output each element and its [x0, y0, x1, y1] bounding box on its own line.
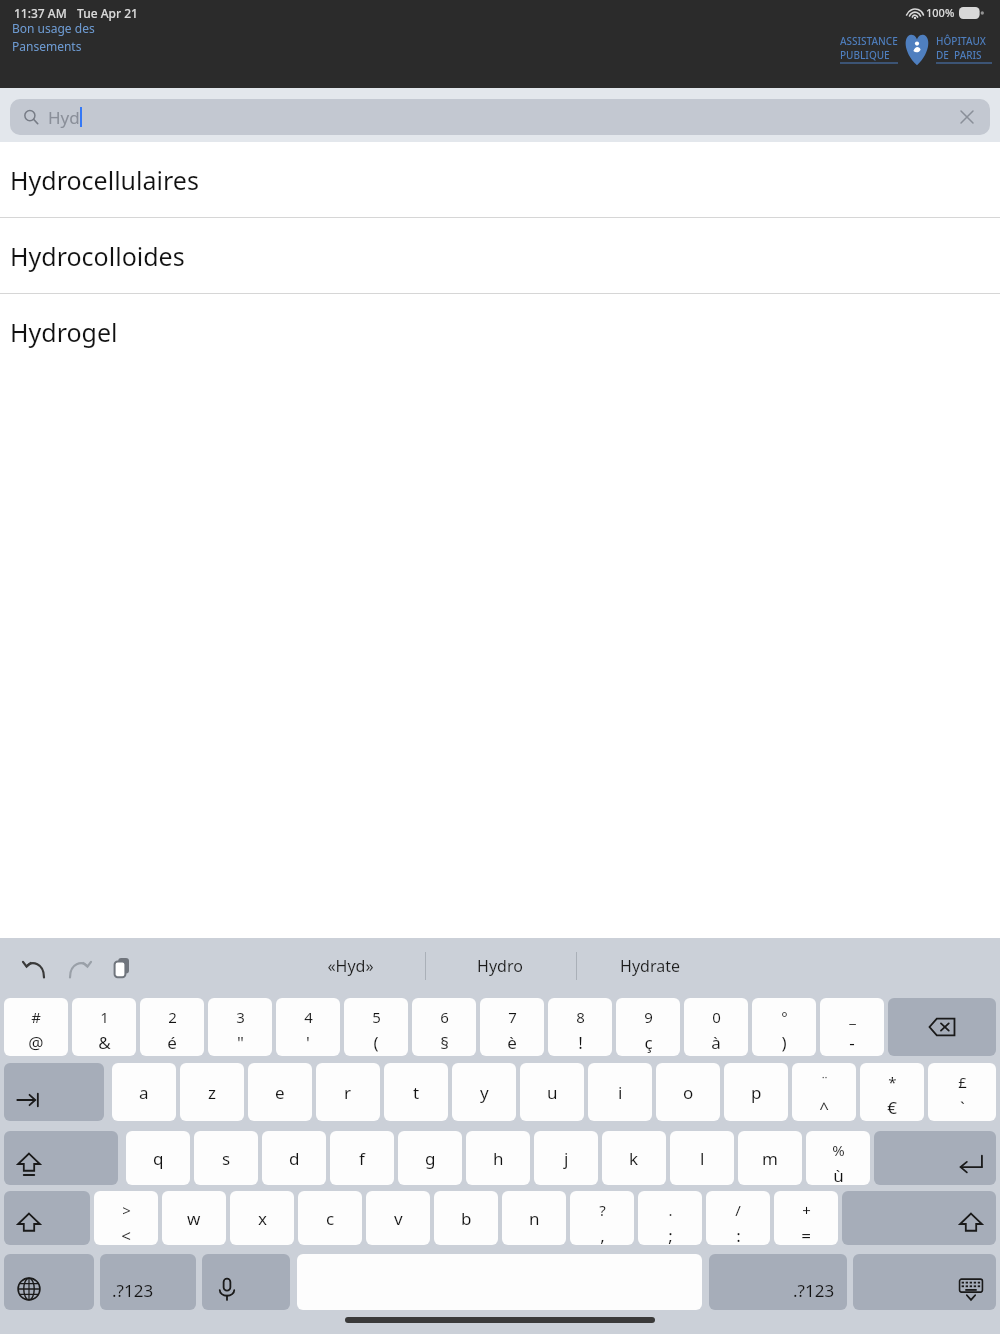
- button[interactable]: Clear search: [952, 102, 982, 132]
- staticText: g: [425, 1147, 436, 1170]
- staticText: Hydrocellulaires: [10, 163, 199, 197]
- staticText: PUBLIQUE: [840, 48, 890, 62]
- button[interactable]: 0: [684, 998, 748, 1056]
- button[interactable]: g: [398, 1131, 462, 1185]
- button[interactable]: f: [330, 1131, 394, 1185]
- staticText: *: [888, 1072, 897, 1092]
- staticText: v: [394, 1207, 403, 1230]
- button[interactable]: n: [502, 1191, 566, 1245]
- button[interactable]: Hydrocolloides: [0, 218, 1000, 293]
- button[interactable]: e: [248, 1063, 312, 1121]
- button[interactable]: y: [452, 1063, 516, 1121]
- button[interactable]: %: [806, 1131, 870, 1185]
- staticText: :: [736, 1224, 741, 1245]
- button[interactable]: *: [860, 1063, 924, 1121]
- button[interactable]: Hyd: [10, 99, 990, 135]
- button[interactable]: t: [384, 1063, 448, 1121]
- staticText: ASSISTANCE: [840, 34, 898, 48]
- staticText: <: [121, 1224, 131, 1245]
- button[interactable]: >: [94, 1191, 158, 1245]
- staticText: ): [781, 1031, 787, 1054]
- button[interactable]: /: [706, 1191, 770, 1245]
- staticText: .: [668, 1200, 673, 1220]
- button[interactable]: Redo: [64, 954, 94, 984]
- button[interactable]: Change keyboard: [4, 1254, 94, 1310]
- staticText: Pansements: [12, 38, 82, 54]
- button[interactable]: °: [752, 998, 816, 1056]
- button[interactable]: ?: [570, 1191, 634, 1245]
- button[interactable]: 1: [72, 998, 136, 1056]
- button[interactable]: £: [928, 1063, 996, 1121]
- button[interactable]: Caps lock: [4, 1131, 118, 1185]
- button[interactable]: o: [656, 1063, 720, 1121]
- button[interactable]: q: [126, 1131, 190, 1185]
- button[interactable]: w: [162, 1191, 226, 1245]
- button[interactable]: c: [298, 1191, 362, 1245]
- button[interactable]: 7: [480, 998, 544, 1056]
- button[interactable]: Tab: [4, 1063, 104, 1121]
- staticText: w: [187, 1207, 201, 1230]
- staticText: r: [344, 1081, 352, 1104]
- button[interactable]: Backspace: [888, 998, 996, 1056]
- button[interactable]: 6: [412, 998, 476, 1056]
- button[interactable]: Shift: [4, 1191, 90, 1245]
- button[interactable]: a: [112, 1063, 176, 1121]
- button[interactable]: Assistance Publique Hopitaux de Paris: [840, 32, 992, 66]
- button[interactable]: k: [602, 1131, 666, 1185]
- button[interactable]: ¨: [792, 1063, 856, 1121]
- button[interactable]: #: [4, 998, 68, 1056]
- button[interactable]: Hide keyboard: [853, 1254, 996, 1310]
- button[interactable]: h: [466, 1131, 530, 1185]
- button[interactable]: u: [520, 1063, 584, 1121]
- staticText: °: [781, 1007, 788, 1027]
- staticText: §: [440, 1031, 449, 1054]
- button[interactable]: «Hyd»: [280, 944, 420, 988]
- button[interactable]: l: [670, 1131, 734, 1185]
- button[interactable]: d: [262, 1131, 326, 1185]
- button[interactable]: +: [774, 1191, 838, 1245]
- button[interactable]: .: [638, 1191, 702, 1245]
- staticText: %: [832, 1140, 845, 1160]
- staticText: &: [98, 1031, 111, 1054]
- button[interactable]: b: [434, 1191, 498, 1245]
- button[interactable]: x: [230, 1191, 294, 1245]
- button[interactable]: 5: [344, 998, 408, 1056]
- button[interactable]: _: [820, 998, 884, 1056]
- staticText: i: [618, 1081, 623, 1104]
- staticText: ;: [668, 1224, 673, 1245]
- button[interactable]: Paste: [108, 952, 138, 982]
- button[interactable]: Hydrate: [580, 944, 720, 988]
- button[interactable]: .?123: [709, 1254, 847, 1310]
- button[interactable]: Shift: [842, 1191, 996, 1245]
- staticText: m: [762, 1147, 778, 1170]
- button[interactable]: z: [180, 1063, 244, 1121]
- button[interactable]: 8: [548, 998, 612, 1056]
- button[interactable]: 2: [140, 998, 204, 1056]
- button[interactable]: j: [534, 1131, 598, 1185]
- staticText: .?123: [112, 1279, 154, 1302]
- button[interactable]: Hydro: [430, 944, 570, 988]
- staticText: «Hyd»: [327, 955, 374, 977]
- staticText: .?123: [793, 1279, 835, 1302]
- staticText: 4: [304, 1007, 313, 1027]
- button[interactable]: .?123: [100, 1254, 196, 1310]
- staticText: (: [373, 1031, 379, 1054]
- button[interactable]: Dictate: [202, 1254, 290, 1310]
- button[interactable]: 4: [276, 998, 340, 1056]
- button[interactable]: r: [316, 1063, 380, 1121]
- button[interactable]: s: [194, 1131, 258, 1185]
- staticText: ,: [600, 1224, 605, 1245]
- button[interactable]: p: [724, 1063, 788, 1121]
- staticText: =: [801, 1224, 811, 1245]
- button[interactable]: 9: [616, 998, 680, 1056]
- button[interactable]: Hydrocellulaires: [0, 142, 1000, 217]
- staticText: é: [167, 1031, 177, 1054]
- button[interactable]: Undo: [20, 954, 50, 984]
- button[interactable]: v: [366, 1191, 430, 1245]
- button[interactable]: m: [738, 1131, 802, 1185]
- button[interactable]: Return: [874, 1131, 996, 1185]
- button[interactable]: 3: [208, 998, 272, 1056]
- button[interactable]: Hydrogel: [0, 294, 1000, 369]
- button[interactable]: i: [588, 1063, 652, 1121]
